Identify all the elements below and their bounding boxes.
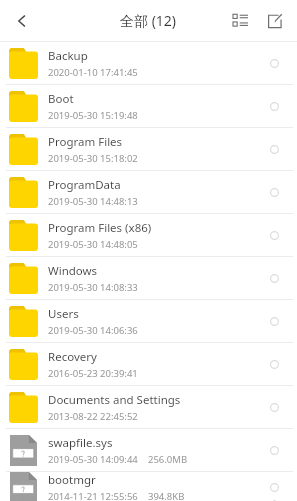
button[interactable]: Select bootmgr (261, 474, 287, 500)
button[interactable]: Edit (259, 5, 291, 37)
button[interactable]: Select ProgramData (261, 179, 287, 205)
button[interactable]: Boot (0, 85, 297, 127)
button[interactable]: View mode (225, 5, 257, 37)
button[interactable]: Program Files (0, 128, 297, 170)
staticText: swapfile.sys (48, 435, 113, 451)
button[interactable]: Select Program Files (x86) (261, 222, 287, 248)
staticText: ProgramData (48, 177, 121, 193)
staticText: 2019-05-30 14:48:13 (48, 195, 138, 208)
staticText: 256.0MB (148, 453, 188, 466)
button[interactable]: Recovery (0, 343, 297, 385)
staticText: 394.8KB (148, 490, 185, 501)
staticText: 2019-05-30 14:09:44 (48, 453, 138, 466)
button[interactable]: Select Backup (261, 50, 287, 76)
button[interactable]: Back (4, 3, 40, 39)
button[interactable]: Select Users (261, 308, 287, 334)
staticText: Recovery (48, 349, 97, 365)
staticText: 2016-05-23 20:39:41 (48, 367, 138, 380)
staticText: 2013-08-22 22:45:52 (48, 410, 138, 423)
button[interactable]: Program Files (x86) (0, 214, 297, 256)
staticText: 2019-05-30 15:19:48 (48, 109, 138, 122)
staticText: 2019-05-30 15:18:02 (48, 152, 138, 165)
staticText: bootmgr (48, 472, 96, 488)
button[interactable]: Select Boot (261, 93, 287, 119)
staticText: 全部 (12) (120, 11, 177, 30)
button[interactable]: Select swapfile.sys (261, 437, 287, 463)
button[interactable]: swapfile.sys (0, 429, 297, 471)
staticText: Backup (48, 48, 88, 64)
button[interactable]: Backup (0, 42, 297, 84)
staticText: Windows (48, 263, 98, 279)
button[interactable]: Select Program Files (261, 136, 287, 162)
staticText: 2014-11-21 12:55:56 (48, 490, 138, 501)
button[interactable]: Select Windows (261, 265, 287, 291)
staticText: 2019-05-30 14:48:05 (48, 238, 138, 251)
staticText: Program Files (48, 134, 123, 150)
staticText: Boot (48, 91, 74, 107)
button[interactable]: Documents and Settings (0, 386, 297, 428)
staticText: 2019-05-30 14:06:36 (48, 324, 138, 337)
button[interactable]: Select Documents and Settings (261, 394, 287, 420)
staticText: Documents and Settings (48, 392, 181, 408)
staticText: Program Files (x86) (48, 220, 152, 236)
button[interactable]: Windows (0, 257, 297, 299)
staticText: 2019-05-30 14:08:33 (48, 281, 138, 294)
button[interactable]: bootmgr (0, 472, 297, 501)
button[interactable]: Select Recovery (261, 351, 287, 377)
button[interactable]: ProgramData (0, 171, 297, 213)
staticText: 2020-01-10 17:41:45 (48, 66, 138, 79)
staticText: Users (48, 306, 79, 322)
button[interactable]: Users (0, 300, 297, 342)
